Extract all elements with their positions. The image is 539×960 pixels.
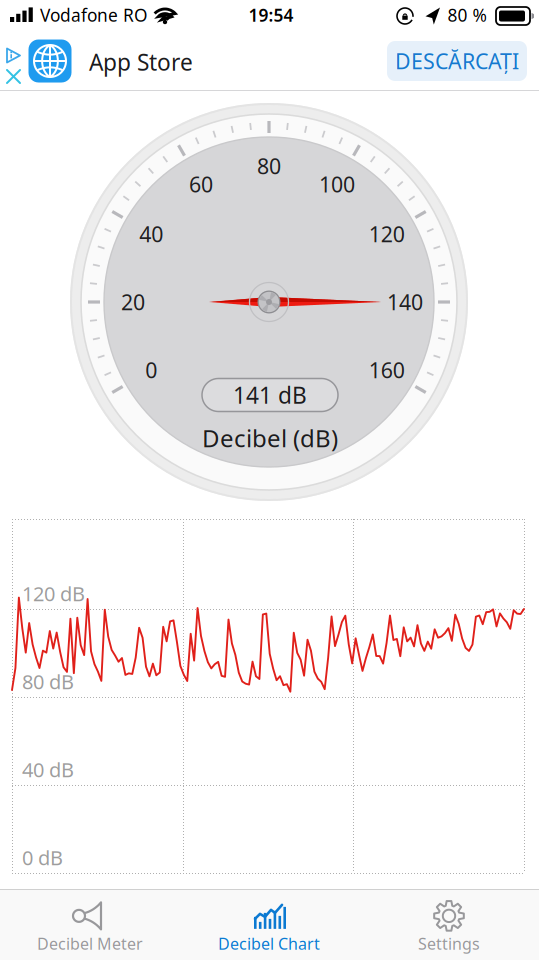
staticText: 100 [319, 170, 355, 198]
staticText: Decibel Meter [37, 933, 143, 954]
staticText: 140 [387, 288, 423, 316]
staticText: 60 [189, 170, 213, 198]
staticText: 120 dB [22, 580, 85, 607]
staticText: 80 dB [22, 668, 74, 695]
button[interactable]: Settings [359, 893, 538, 960]
staticText: Vodafone RO [40, 3, 148, 26]
staticText: 40 [139, 220, 163, 248]
staticText: 141 dB [233, 380, 307, 410]
staticText: App Store [89, 47, 193, 77]
button[interactable]: Decibel Meter [0, 893, 179, 960]
staticText: 20 [121, 288, 145, 316]
staticText: 40 dB [22, 756, 74, 783]
staticText: 120 [369, 220, 405, 248]
staticText: Decibel Chart [218, 933, 320, 954]
staticText: Settings [418, 933, 480, 954]
staticText: 0 [145, 356, 157, 384]
staticText: Decibel (dB) [202, 422, 338, 454]
staticText: 80 % [447, 3, 486, 26]
staticText: 19:54 [248, 3, 293, 26]
staticText: DESCĂRCAȚI [395, 47, 519, 75]
staticText: 0 dB [22, 844, 63, 871]
button[interactable]: Decibel Chart [179, 893, 358, 960]
staticText: 160 [369, 356, 405, 384]
button[interactable]: App Store [89, 41, 205, 83]
button[interactable]: DESCĂRCAȚI [387, 41, 527, 81]
staticText: 80 [257, 152, 281, 180]
